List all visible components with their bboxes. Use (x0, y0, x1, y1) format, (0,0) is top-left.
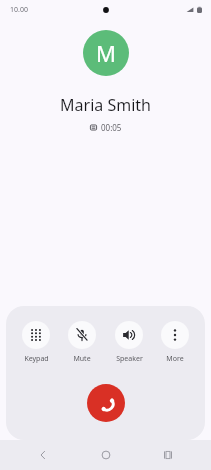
button[interactable]: Mute (60, 320, 104, 365)
button[interactable]: Home (93, 442, 119, 468)
button[interactable]: End call (87, 384, 125, 422)
button[interactable]: Back (30, 442, 56, 468)
staticText: More (166, 354, 184, 364)
staticText: Speaker (116, 354, 143, 364)
button[interactable]: Recent apps (155, 442, 181, 468)
staticText: Mute (73, 354, 91, 364)
staticText: 10.00 (10, 5, 28, 15)
button[interactable]: More (153, 320, 197, 365)
button[interactable]: Keypad (14, 320, 58, 365)
staticText: Keypad (24, 354, 49, 364)
staticText: 00:05 (101, 122, 122, 133)
button[interactable]: Speaker (107, 320, 151, 365)
staticText: Maria Smith (0, 94, 211, 116)
staticText: M (96, 38, 116, 68)
